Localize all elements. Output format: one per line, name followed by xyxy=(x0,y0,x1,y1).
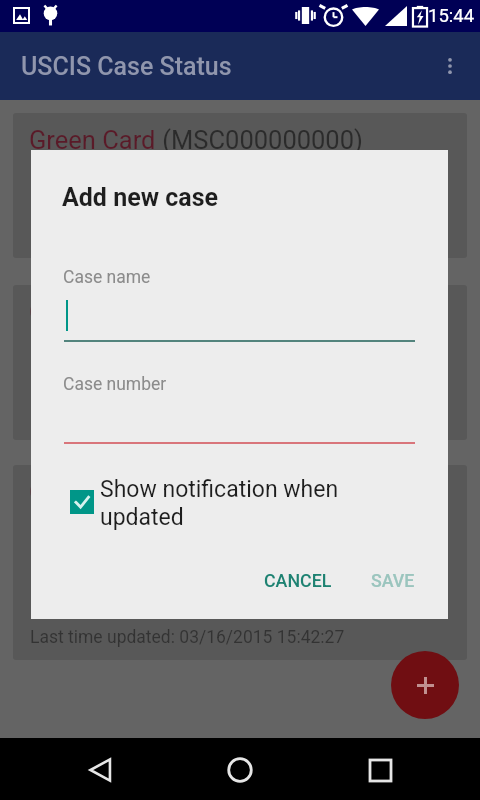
staticText: Green Card xyxy=(29,477,156,507)
staticText: Last time updated: 03/16/2015 15:42:27 xyxy=(30,627,345,648)
staticText: (MSC000000000) xyxy=(156,125,363,155)
button[interactable]: Add case xyxy=(391,651,459,719)
button[interactable]: More options xyxy=(426,42,474,90)
button[interactable]: Home xyxy=(211,741,269,799)
staticText: Add new case xyxy=(62,183,218,212)
button[interactable]: Green Card xyxy=(13,113,467,258)
staticText: SAVE xyxy=(371,570,415,591)
staticText: Case number xyxy=(63,374,167,395)
button[interactable]: Show notification when updated xyxy=(70,476,390,531)
staticText: CANCEL xyxy=(264,570,332,591)
staticText: (MSC000000002) xyxy=(156,477,363,507)
button[interactable]: Back xyxy=(71,741,129,799)
staticText: Show notification when updated xyxy=(100,476,339,531)
staticText: 15:44 xyxy=(428,5,475,27)
button[interactable]: Green Card xyxy=(13,465,467,660)
staticText: USCIS Case Status xyxy=(21,52,232,81)
button[interactable]: SAVE xyxy=(359,560,427,601)
button[interactable]: Green Card xyxy=(13,285,467,440)
staticText: Green Card xyxy=(29,125,156,155)
button[interactable]: CANCEL xyxy=(252,560,344,601)
button[interactable]: Recents xyxy=(351,741,409,799)
staticText: Case name xyxy=(63,267,151,288)
staticText: Green Card xyxy=(29,297,156,327)
